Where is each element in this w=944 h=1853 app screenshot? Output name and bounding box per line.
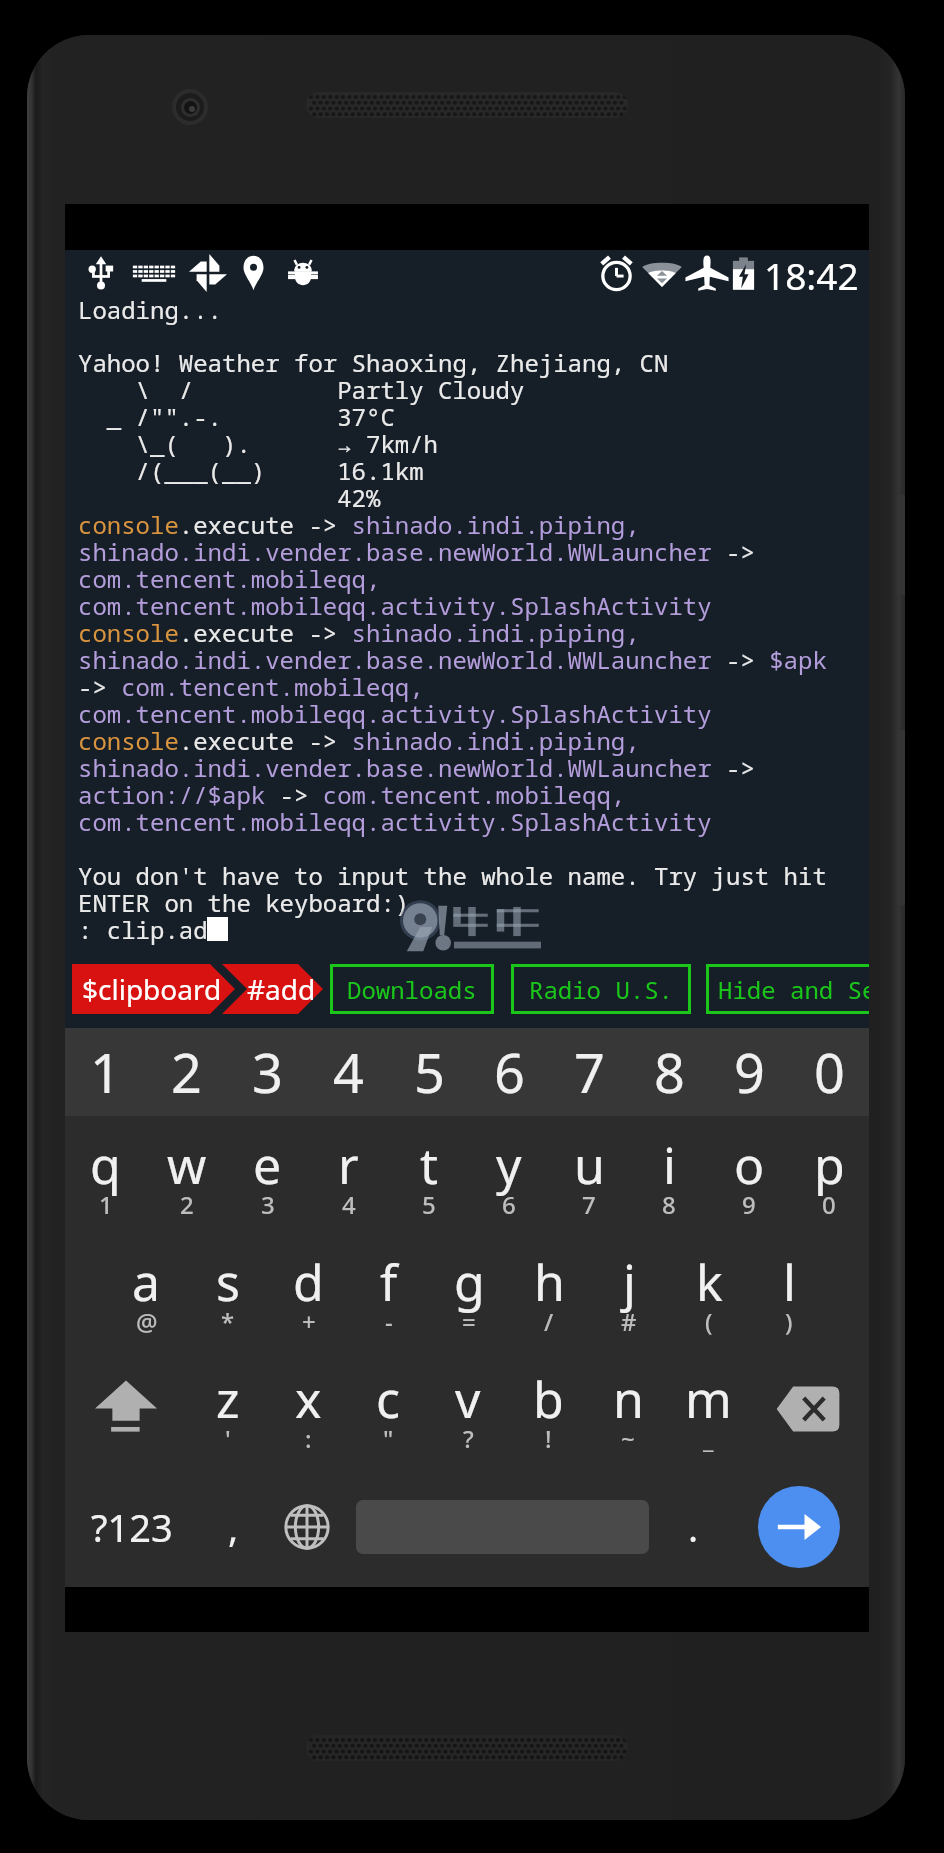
staticText: ! <box>545 1422 552 1455</box>
button[interactable]: k <box>669 1233 749 1350</box>
staticText: - <box>385 1305 393 1338</box>
staticText: 5 <box>422 1188 436 1221</box>
staticText: ?123 <box>91 1501 173 1553</box>
staticText: 3 <box>261 1188 275 1221</box>
staticText: q <box>90 1131 121 1199</box>
button[interactable]: 0 <box>789 1028 869 1116</box>
staticText: m <box>685 1365 732 1433</box>
staticText: l <box>783 1248 796 1316</box>
staticText: w <box>167 1131 207 1199</box>
staticText: 5 <box>414 1035 445 1109</box>
button[interactable]: a <box>106 1233 187 1350</box>
staticText: ) <box>785 1305 793 1338</box>
staticText: s <box>216 1248 240 1316</box>
button[interactable]: Downloads <box>330 964 494 1014</box>
staticText: _ <box>703 1422 714 1455</box>
staticText: , <box>228 1501 239 1553</box>
staticText: h <box>534 1248 565 1316</box>
button[interactable]: b <box>508 1350 588 1467</box>
button[interactable]: j <box>589 1233 669 1350</box>
staticText: r <box>338 1131 359 1199</box>
button[interactable]: y <box>469 1116 549 1233</box>
staticText: d <box>293 1248 324 1316</box>
staticText: 6 <box>494 1035 525 1109</box>
button[interactable]: #add <box>222 964 332 1014</box>
button[interactable]: 9 <box>709 1028 789 1116</box>
button[interactable]: d <box>268 1233 349 1350</box>
staticText: Downloads <box>347 973 477 1006</box>
button[interactable]: Radio U.S. <box>511 964 691 1014</box>
staticText: z <box>216 1365 240 1433</box>
staticText: k <box>696 1248 723 1316</box>
button[interactable]: 8 <box>629 1028 709 1116</box>
staticText: = <box>462 1305 476 1338</box>
staticText: 8 <box>662 1188 676 1221</box>
button[interactable]: , <box>198 1467 268 1587</box>
button[interactable]: Backspace <box>748 1350 869 1467</box>
button[interactable]: Hide and Seek <box>706 964 869 1014</box>
button[interactable]: f <box>349 1233 429 1350</box>
staticText: x <box>295 1365 322 1433</box>
button[interactable]: g <box>429 1233 509 1350</box>
staticText: Radio U.S. <box>529 973 673 1006</box>
button[interactable]: x <box>268 1350 348 1467</box>
staticText: a <box>132 1248 161 1316</box>
staticText: 1 <box>90 1035 121 1109</box>
button[interactable]: o <box>709 1116 789 1233</box>
staticText: Loading... Yahoo! Weather for Shaoxing, … <box>78 293 827 946</box>
button[interactable]: u <box>549 1116 629 1233</box>
staticText: 0 <box>814 1035 845 1109</box>
staticText: ( <box>705 1305 713 1338</box>
staticText: Hide and Seek <box>718 973 869 1006</box>
button[interactable]: $clipboard <box>72 964 235 1014</box>
staticText: t <box>420 1131 439 1199</box>
staticText: n <box>613 1365 644 1433</box>
staticText: f <box>380 1248 398 1316</box>
button[interactable]: c <box>348 1350 428 1467</box>
button[interactable]: r <box>308 1116 389 1233</box>
button[interactable]: t <box>389 1116 469 1233</box>
staticText: p <box>814 1131 845 1199</box>
button[interactable]: 5 <box>389 1028 469 1116</box>
button[interactable]: 3 <box>227 1028 308 1116</box>
staticText: * <box>221 1305 235 1338</box>
button[interactable]: z <box>187 1350 268 1467</box>
button[interactable]: n <box>588 1350 668 1467</box>
button[interactable]: l <box>749 1233 829 1350</box>
button[interactable]: Shift <box>65 1350 187 1467</box>
staticText: $clipboard <box>82 970 222 1008</box>
button[interactable]: Change language <box>268 1467 346 1587</box>
button[interactable]: 4 <box>308 1028 389 1116</box>
staticText: 1 <box>99 1188 113 1221</box>
staticText: " <box>383 1422 394 1455</box>
button[interactable]: h <box>509 1233 589 1350</box>
button[interactable]: p <box>789 1116 869 1233</box>
staticText: c <box>376 1365 400 1433</box>
staticText: 7 <box>574 1035 605 1109</box>
button[interactable]: 7 <box>549 1028 629 1116</box>
staticText: 9 <box>734 1035 765 1109</box>
button[interactable]: w <box>146 1116 227 1233</box>
staticText: y <box>496 1131 522 1199</box>
staticText: ' <box>225 1422 231 1455</box>
button[interactable]: 6 <box>469 1028 549 1116</box>
staticText: 0 <box>822 1188 836 1221</box>
button[interactable]: e <box>227 1116 308 1233</box>
button[interactable]: 1 <box>65 1028 146 1116</box>
staticText: 7 <box>582 1188 596 1221</box>
button[interactable]: Enter <box>728 1467 869 1587</box>
button[interactable]: ?123 <box>65 1467 198 1587</box>
staticText: : <box>305 1422 312 1455</box>
button[interactable]: m <box>668 1350 748 1467</box>
button[interactable]: s <box>187 1233 268 1350</box>
button[interactable]: Space <box>346 1467 658 1587</box>
button[interactable]: i <box>629 1116 709 1233</box>
staticText: v <box>455 1365 481 1433</box>
staticText: 9 <box>742 1188 756 1221</box>
button[interactable]: 2 <box>146 1028 227 1116</box>
staticText: g <box>454 1248 485 1316</box>
button[interactable]: v <box>428 1350 508 1467</box>
staticText: ~ <box>621 1422 635 1455</box>
button[interactable]: q <box>65 1116 146 1233</box>
button[interactable]: . <box>658 1467 728 1587</box>
